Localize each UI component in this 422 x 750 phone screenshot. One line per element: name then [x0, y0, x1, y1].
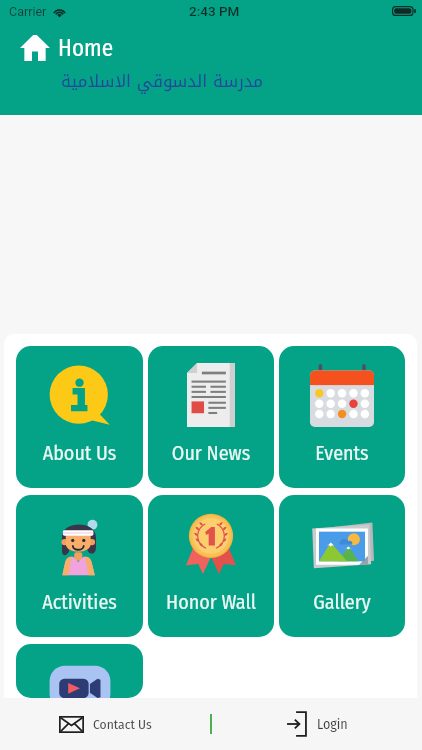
staticText: Honor Wall — [148, 590, 274, 614]
staticText: Login — [317, 716, 348, 733]
staticText: Gallery — [279, 590, 405, 614]
button[interactable]: Login — [212, 698, 422, 750]
staticText: Home — [58, 34, 114, 62]
button[interactable]: Gallery — [279, 495, 405, 637]
button[interactable]: Events — [279, 346, 405, 488]
staticText: Carrier — [9, 4, 47, 19]
staticText: مدرسة الدسوقي الاسلامية — [0, 65, 326, 97]
staticText: Our News — [148, 441, 274, 465]
staticText: Contact Us — [93, 716, 152, 732]
button[interactable]: Honor Wall — [148, 495, 274, 637]
other: Login — [286, 711, 307, 737]
other: Contact Us — [59, 716, 84, 733]
button[interactable]: Activities — [16, 495, 143, 637]
button[interactable]: About Us — [16, 346, 143, 488]
staticText: Activities — [16, 590, 143, 614]
button[interactable]: Contact Us — [0, 698, 210, 750]
staticText: About Us — [16, 441, 143, 465]
button[interactable]: Our News — [148, 346, 274, 488]
button[interactable]: Videos — [16, 644, 143, 698]
staticText: 2:43 PM — [189, 3, 240, 19]
staticText: Events — [279, 441, 405, 465]
